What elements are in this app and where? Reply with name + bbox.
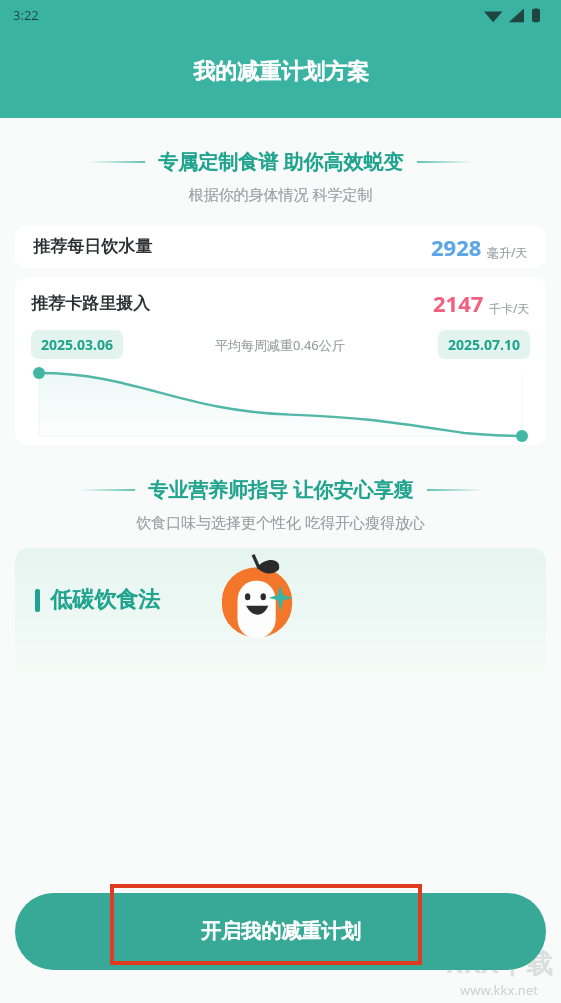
- staticText: 3:22: [13, 6, 39, 24]
- staticText: 2147: [433, 288, 484, 318]
- button[interactable]: 开启我的减重计划: [15, 893, 546, 970]
- staticText: 2025.07.10: [448, 335, 520, 354]
- button[interactable]: 2025.03.06: [31, 330, 123, 359]
- staticText: 2025.03.06: [41, 335, 113, 354]
- staticText: 我的减重计划方案: [193, 58, 369, 86]
- staticText: KKX下载: [445, 944, 553, 981]
- staticText: 推荐每日饮水量: [33, 236, 152, 257]
- staticText: 千卡/天: [489, 300, 530, 316]
- button[interactable]: 低碳饮食法: [15, 548, 546, 678]
- staticText: 2928: [431, 232, 482, 262]
- staticText: 毫升/天: [487, 244, 528, 260]
- staticText: 专属定制食谱 助你高效蜕变: [158, 148, 404, 175]
- button[interactable]: 2025.07.10: [438, 330, 530, 359]
- staticText: 推荐卡路里摄入: [31, 293, 150, 314]
- button[interactable]: 推荐每日饮水量: [15, 225, 546, 268]
- staticText: www.kkx.net: [460, 981, 538, 999]
- staticText: 开启我的减重计划: [201, 919, 361, 944]
- staticText: 根据你的身体情况 科学定制: [0, 184, 561, 204]
- button[interactable]: 推荐卡路里摄入: [15, 277, 546, 445]
- staticText: 平均每周减重0.46公斤: [215, 336, 345, 354]
- staticText: 专业营养师指导 让你安心享瘦: [148, 476, 414, 503]
- staticText: 低碳饮食法: [50, 586, 160, 614]
- staticText: 饮食口味与选择更个性化 吃得开心瘦得放心: [0, 512, 561, 532]
